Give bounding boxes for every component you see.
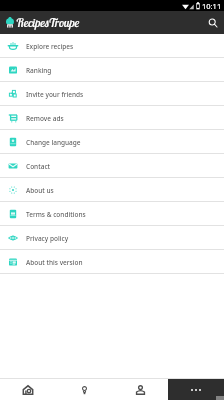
button[interactable]: About this version xyxy=(0,250,224,274)
staticText: Invite your friends xyxy=(26,90,84,99)
staticText: Explore recipes xyxy=(26,42,74,51)
staticText: Privacy policy xyxy=(26,234,69,243)
staticText: About this version xyxy=(26,258,83,267)
button[interactable]: Explore recipes xyxy=(0,34,224,58)
button[interactable]: Privacy policy xyxy=(0,226,224,250)
button[interactable]: Contact xyxy=(0,154,224,178)
button[interactable]: Tips xyxy=(56,379,112,400)
button[interactable]: Home xyxy=(0,379,56,400)
button[interactable]: Search xyxy=(201,11,224,34)
staticText: Contact xyxy=(26,162,51,171)
button[interactable]: Terms & conditions xyxy=(0,202,224,226)
button[interactable]: Remove ads xyxy=(0,106,224,130)
staticText: RecipesTroupe xyxy=(16,15,80,30)
button[interactable]: Invite your friends xyxy=(0,82,224,106)
button[interactable]: Profile xyxy=(112,379,168,400)
staticText: Remove ads xyxy=(26,114,64,123)
button[interactable]: About us xyxy=(0,178,224,202)
staticText: Ranking xyxy=(26,66,52,75)
staticText: About us xyxy=(26,186,54,195)
button[interactable]: Ranking xyxy=(0,58,224,82)
button[interactable]: More options xyxy=(168,379,224,400)
staticText: Change language xyxy=(26,138,81,147)
staticText: 10:11 xyxy=(202,1,222,11)
button[interactable]: Change language xyxy=(0,130,224,154)
staticText: Terms & conditions xyxy=(26,210,86,219)
